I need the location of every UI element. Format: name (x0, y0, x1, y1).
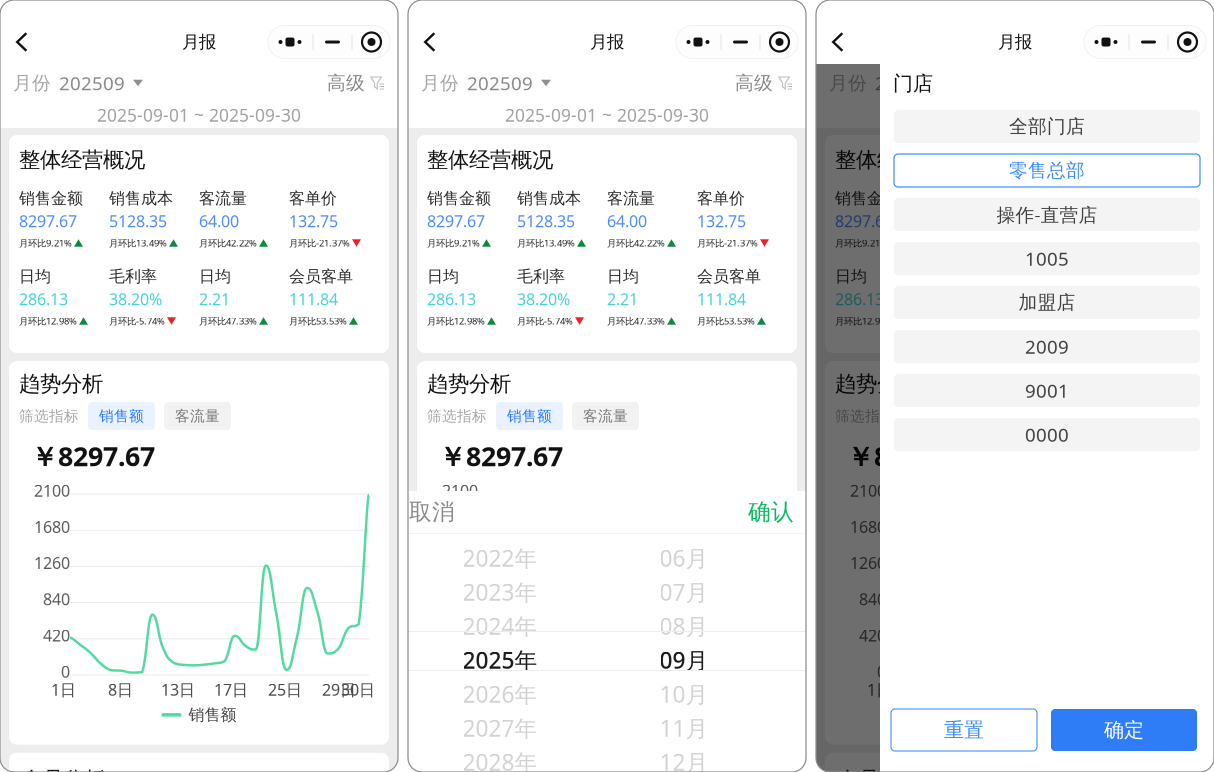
button[interactable]: 全部门店 (894, 110, 1200, 143)
staticText: 确定 (1104, 718, 1144, 742)
button[interactable]: 2009 (894, 330, 1200, 363)
button[interactable]: 加盟店 (894, 286, 1200, 319)
staticText: 2025-09-01 ~ 2025-09-30 (97, 103, 301, 126)
staticText: 2026年 (462, 679, 537, 709)
staticText: 零售总部 (1009, 159, 1085, 182)
staticText: 日均 (835, 267, 867, 286)
button[interactable]: 更多 (1084, 25, 1206, 58)
button[interactable]: 返回 (818, 22, 858, 62)
staticText: 286.13 (835, 288, 884, 310)
staticText: 1260 (442, 552, 478, 573)
button[interactable]: 返回 (2, 22, 42, 62)
staticText: 趋势分析 (427, 371, 511, 397)
staticText: 销售金额 (427, 189, 491, 208)
button[interactable]: 返回 (410, 22, 450, 62)
staticText: 月环比47.33% (1015, 315, 1073, 327)
button[interactable]: 确定 (1051, 709, 1197, 751)
staticText: 会员分析 (837, 767, 921, 772)
staticText: 月环比47.33% (199, 315, 257, 327)
button[interactable]: 0000 (894, 418, 1200, 451)
staticText: 2025-09-01 ~ 2025-09-30 (913, 103, 1117, 126)
staticText: 月环比12.98% (427, 315, 485, 327)
button[interactable]: 客流量 (980, 402, 1047, 430)
staticText: 420 (43, 625, 70, 646)
staticText: 2009 (1025, 334, 1069, 359)
staticText: ￥8297.67 (31, 438, 155, 474)
button[interactable]: 销售额 (88, 402, 155, 430)
button[interactable]: 1005 (894, 242, 1200, 275)
staticText: 客流量 (175, 407, 220, 425)
button[interactable]: 客流量 (164, 402, 231, 430)
button[interactable]: 高级 (735, 71, 793, 94)
staticText: 2022年 (462, 543, 537, 573)
button[interactable]: 高级 (327, 71, 385, 94)
staticText: 09月 (659, 645, 708, 675)
staticText: 202509 (59, 71, 125, 95)
staticText: 销售额 (507, 407, 552, 425)
staticText: 销售成本 (517, 189, 581, 208)
button[interactable]: 月份 (421, 71, 551, 95)
button[interactable]: 销售额 (496, 402, 563, 430)
staticText: 840 (451, 588, 478, 610)
staticText: 整体经营概况 (835, 147, 961, 173)
staticText: 日均 (427, 267, 459, 286)
staticText: 111.84 (697, 288, 746, 310)
staticText: 2025-09-01 ~ 2025-09-30 (505, 103, 709, 126)
staticText: 2100 (34, 480, 70, 501)
staticText: 0000 (1025, 422, 1069, 447)
staticText: 月环比12.98% (835, 315, 893, 327)
staticText: 确认 (748, 498, 794, 526)
staticText: 趋势分析 (19, 371, 103, 397)
staticText: 840 (859, 588, 886, 610)
staticText: 25日 (676, 679, 710, 700)
staticText: 29日 (322, 679, 356, 700)
staticText: 132.75 (697, 210, 746, 232)
staticText: 11月 (659, 713, 708, 743)
staticText: 2024年 (462, 611, 537, 641)
button[interactable]: 更多 (268, 25, 390, 58)
button[interactable]: 操作-直营店 (894, 198, 1200, 231)
staticText: 月份 (421, 71, 459, 94)
button[interactable]: 取消 (409, 491, 489, 533)
staticText: 2.21 (607, 288, 638, 310)
staticText: 5128.35 (109, 210, 167, 232)
staticText: 1日 (51, 679, 76, 700)
button[interactable]: 确认 (714, 491, 794, 533)
button[interactable]: 月份 (13, 71, 143, 95)
staticText: 月环比42.22% (199, 237, 257, 249)
button[interactable]: 更多 (676, 25, 798, 58)
staticText: 月环比42.22% (607, 237, 665, 249)
button[interactable]: 9001 (894, 374, 1200, 407)
staticText: 销售金额 (19, 189, 83, 208)
staticText: 1260 (850, 552, 886, 573)
staticText: 202509 (875, 71, 941, 95)
staticText: 2100 (442, 480, 478, 501)
staticText: 月环比9.21% (19, 237, 72, 249)
staticText: 1日 (867, 679, 892, 700)
staticText: 1680 (34, 516, 70, 537)
staticText: 0 (61, 661, 70, 682)
staticText: 月环比47.33% (607, 315, 665, 327)
button[interactable]: 月份 (829, 71, 959, 95)
button[interactable]: 重置 (891, 709, 1037, 751)
button[interactable]: 销售额 (904, 402, 971, 430)
staticText: 全部门店 (1009, 115, 1085, 138)
staticText: 06月 (659, 543, 708, 573)
button[interactable]: 零售总部 (894, 154, 1200, 187)
staticText: 客流量 (583, 407, 628, 425)
staticText: 月环比-21.37% (289, 237, 350, 249)
staticText: 1005 (1025, 246, 1069, 271)
staticText: 销售额 (915, 407, 960, 425)
button[interactable]: 客流量 (572, 402, 639, 430)
staticText: 2025年 (462, 645, 537, 675)
staticText: 销售额 (99, 407, 144, 425)
staticText: 会员分析 (21, 767, 105, 772)
